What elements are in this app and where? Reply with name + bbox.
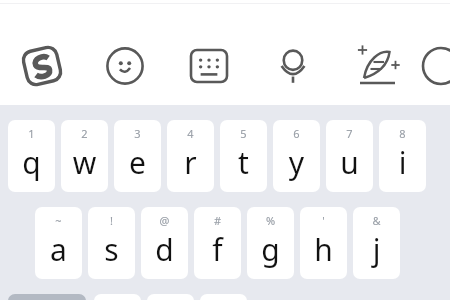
staticText: u	[326, 142, 373, 183]
staticText: g	[247, 229, 294, 270]
button[interactable]: @	[141, 207, 188, 279]
button[interactable]: 6	[273, 120, 320, 192]
staticText: 4	[167, 126, 214, 141]
button[interactable]: !	[88, 207, 135, 279]
staticText: j	[353, 229, 400, 270]
button[interactable]: ~	[35, 207, 82, 279]
staticText: e	[114, 142, 161, 183]
staticText: q	[8, 142, 55, 183]
staticText: h	[300, 229, 347, 270]
staticText: ~	[35, 213, 82, 228]
button[interactable]: 2	[61, 120, 108, 192]
staticText: &	[353, 213, 400, 228]
staticText: 3	[114, 126, 161, 141]
button[interactable]	[8, 294, 86, 300]
staticText: s	[88, 229, 135, 270]
button[interactable]: Switch keyboard	[187, 45, 231, 87]
button[interactable]: More options	[430, 44, 450, 88]
button[interactable]: (	[94, 294, 141, 300]
button[interactable]: )	[147, 294, 194, 300]
staticText: 2	[61, 126, 108, 141]
staticText: #	[194, 213, 241, 228]
button[interactable]: 8	[379, 120, 426, 192]
button[interactable]: %	[247, 207, 294, 279]
button[interactable]: Voice input	[271, 42, 315, 90]
staticText: 1	[8, 126, 55, 141]
button[interactable]: &	[353, 207, 400, 279]
button[interactable]: Sogou keyboard menu	[19, 43, 65, 89]
staticText: '	[300, 213, 347, 228]
staticText: w	[61, 142, 108, 183]
staticText: !	[88, 213, 135, 228]
button[interactable]: 3	[114, 120, 161, 192]
button[interactable]: 4	[167, 120, 214, 192]
staticText: 8	[379, 126, 426, 141]
staticText: r	[167, 142, 214, 183]
staticText: a	[35, 229, 82, 270]
staticText: %	[247, 213, 294, 228]
button[interactable]: -	[200, 294, 247, 300]
button[interactable]: Handwriting input	[353, 40, 403, 90]
button[interactable]: #	[194, 207, 241, 279]
button[interactable]: '	[300, 207, 347, 279]
staticText: f	[194, 229, 241, 270]
staticText: 7	[326, 126, 373, 141]
staticText: y	[273, 142, 320, 183]
button[interactable]: 5	[220, 120, 267, 192]
button[interactable]: 1	[8, 120, 55, 192]
staticText: 5	[220, 126, 267, 141]
staticText: i	[379, 142, 426, 183]
staticText: t	[220, 142, 267, 183]
staticText: d	[141, 229, 188, 270]
button[interactable]: 7	[326, 120, 373, 192]
staticText: 6	[273, 126, 320, 141]
staticText: @	[141, 213, 188, 228]
button[interactable]: Emoji	[103, 44, 147, 88]
